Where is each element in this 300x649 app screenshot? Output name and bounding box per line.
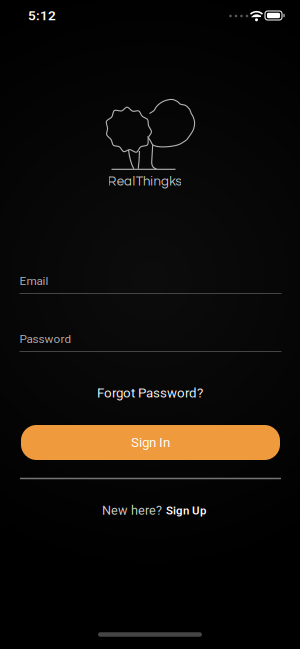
staticText: Email bbox=[19, 274, 48, 288]
staticText: Password bbox=[19, 332, 71, 346]
button[interactable]: Forgot Password? bbox=[97, 385, 203, 401]
button[interactable]: Email bbox=[19, 266, 281, 296]
button[interactable]: New here? bbox=[102, 503, 206, 518]
staticText: 5:12 bbox=[28, 7, 56, 23]
staticText: Forgot Password? bbox=[97, 385, 203, 401]
staticText: Sign In bbox=[131, 435, 170, 450]
staticText: Sign Up bbox=[166, 504, 206, 517]
staticText: RealThingks bbox=[107, 175, 181, 188]
button[interactable]: Password bbox=[19, 324, 281, 354]
staticText: New here? bbox=[102, 503, 162, 518]
button[interactable]: Sign In bbox=[21, 425, 280, 460]
